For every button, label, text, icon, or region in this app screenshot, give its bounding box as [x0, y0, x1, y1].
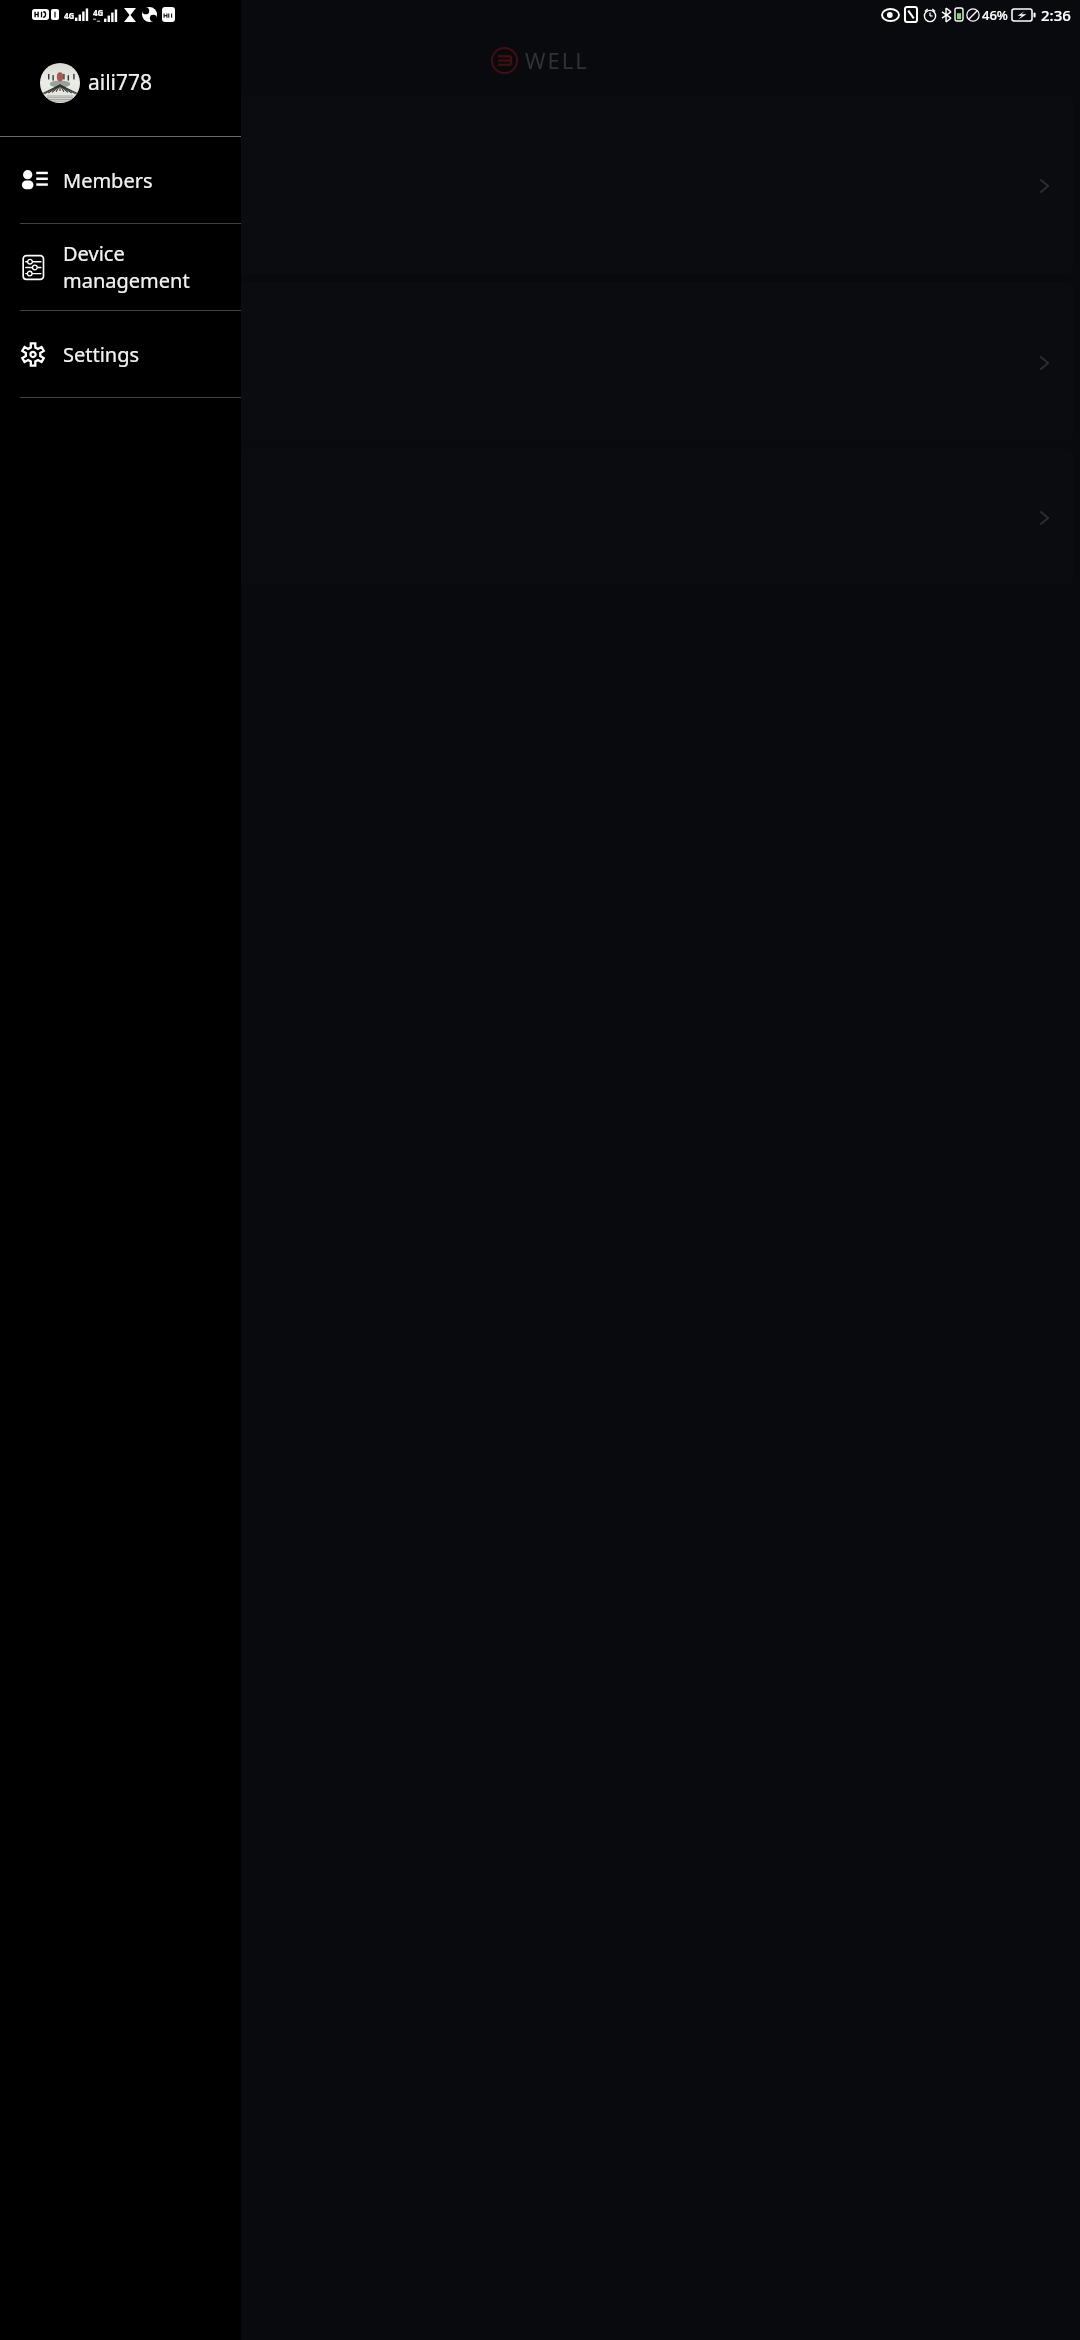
other: Settings — [20, 340, 49, 369]
button[interactable]: Start measuring — [7, 282, 1073, 441]
staticText: Weight change: — [21, 237, 160, 263]
button[interactable]: Members — [0, 137, 241, 223]
staticText: Members — [63, 167, 153, 194]
staticText: 46% — [982, 6, 1008, 24]
staticText: aili778 — [88, 68, 153, 97]
staticText: 4G — [93, 7, 104, 18]
staticText: Pulse — [21, 365, 67, 390]
button[interactable]: aili778 — [0, 29, 241, 136]
button[interactable]: Details — [1029, 171, 1059, 201]
button[interactable]: Start measuring — [7, 95, 1073, 274]
staticText: bpm — [21, 336, 67, 365]
staticText: Settings — [63, 341, 140, 368]
button[interactable]: Settings — [0, 311, 241, 397]
button[interactable]: Device management — [0, 224, 241, 310]
staticText: 28 — [21, 149, 63, 198]
staticText: Device management — [63, 240, 241, 294]
staticText: 2:36 — [1041, 5, 1071, 25]
staticText: WELL — [525, 45, 589, 75]
staticText: Start measuring — [21, 293, 173, 320]
button[interactable]: Details — [1029, 348, 1059, 378]
button[interactable]: Details — [1029, 503, 1059, 533]
button[interactable]: Start measuring — [7, 449, 1073, 584]
other: Device management — [20, 253, 49, 282]
staticText: 4G — [64, 10, 75, 21]
other: Members — [20, 166, 49, 195]
